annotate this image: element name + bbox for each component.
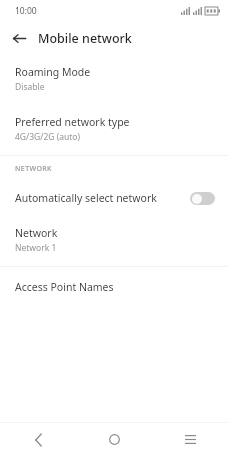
button[interactable]: Back <box>0 423 76 456</box>
staticText: NETWORK <box>15 164 52 174</box>
staticText: Mobile network <box>38 30 132 47</box>
button[interactable]: Roaming Mode <box>0 54 228 105</box>
staticText: Network <box>15 226 58 240</box>
staticText: Preferred network type <box>15 115 130 129</box>
button[interactable]: Recent apps <box>152 423 228 456</box>
staticText: Network 1 <box>15 242 57 254</box>
staticText: Roaming Mode <box>15 65 91 79</box>
button[interactable]: Automatically select network <box>0 180 228 216</box>
button[interactable]: Access Point Names <box>0 267 228 307</box>
staticText: Disable <box>15 81 45 93</box>
button[interactable]: Network <box>0 216 228 266</box>
button[interactable]: Back <box>7 26 31 50</box>
button[interactable]: Home <box>76 423 152 456</box>
staticText: 4G/3G/2G (auto) <box>15 131 81 143</box>
staticText: Automatically select network <box>15 191 190 205</box>
staticText: 10:00 <box>15 5 37 17</box>
staticText: Access Point Names <box>15 280 114 294</box>
button[interactable]: Preferred network type <box>0 105 228 155</box>
